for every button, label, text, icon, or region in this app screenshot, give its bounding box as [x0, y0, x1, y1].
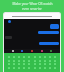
staticText: Make your Wear OS watch: [12, 2, 53, 6]
staticText: even smarter: [22, 7, 42, 11]
